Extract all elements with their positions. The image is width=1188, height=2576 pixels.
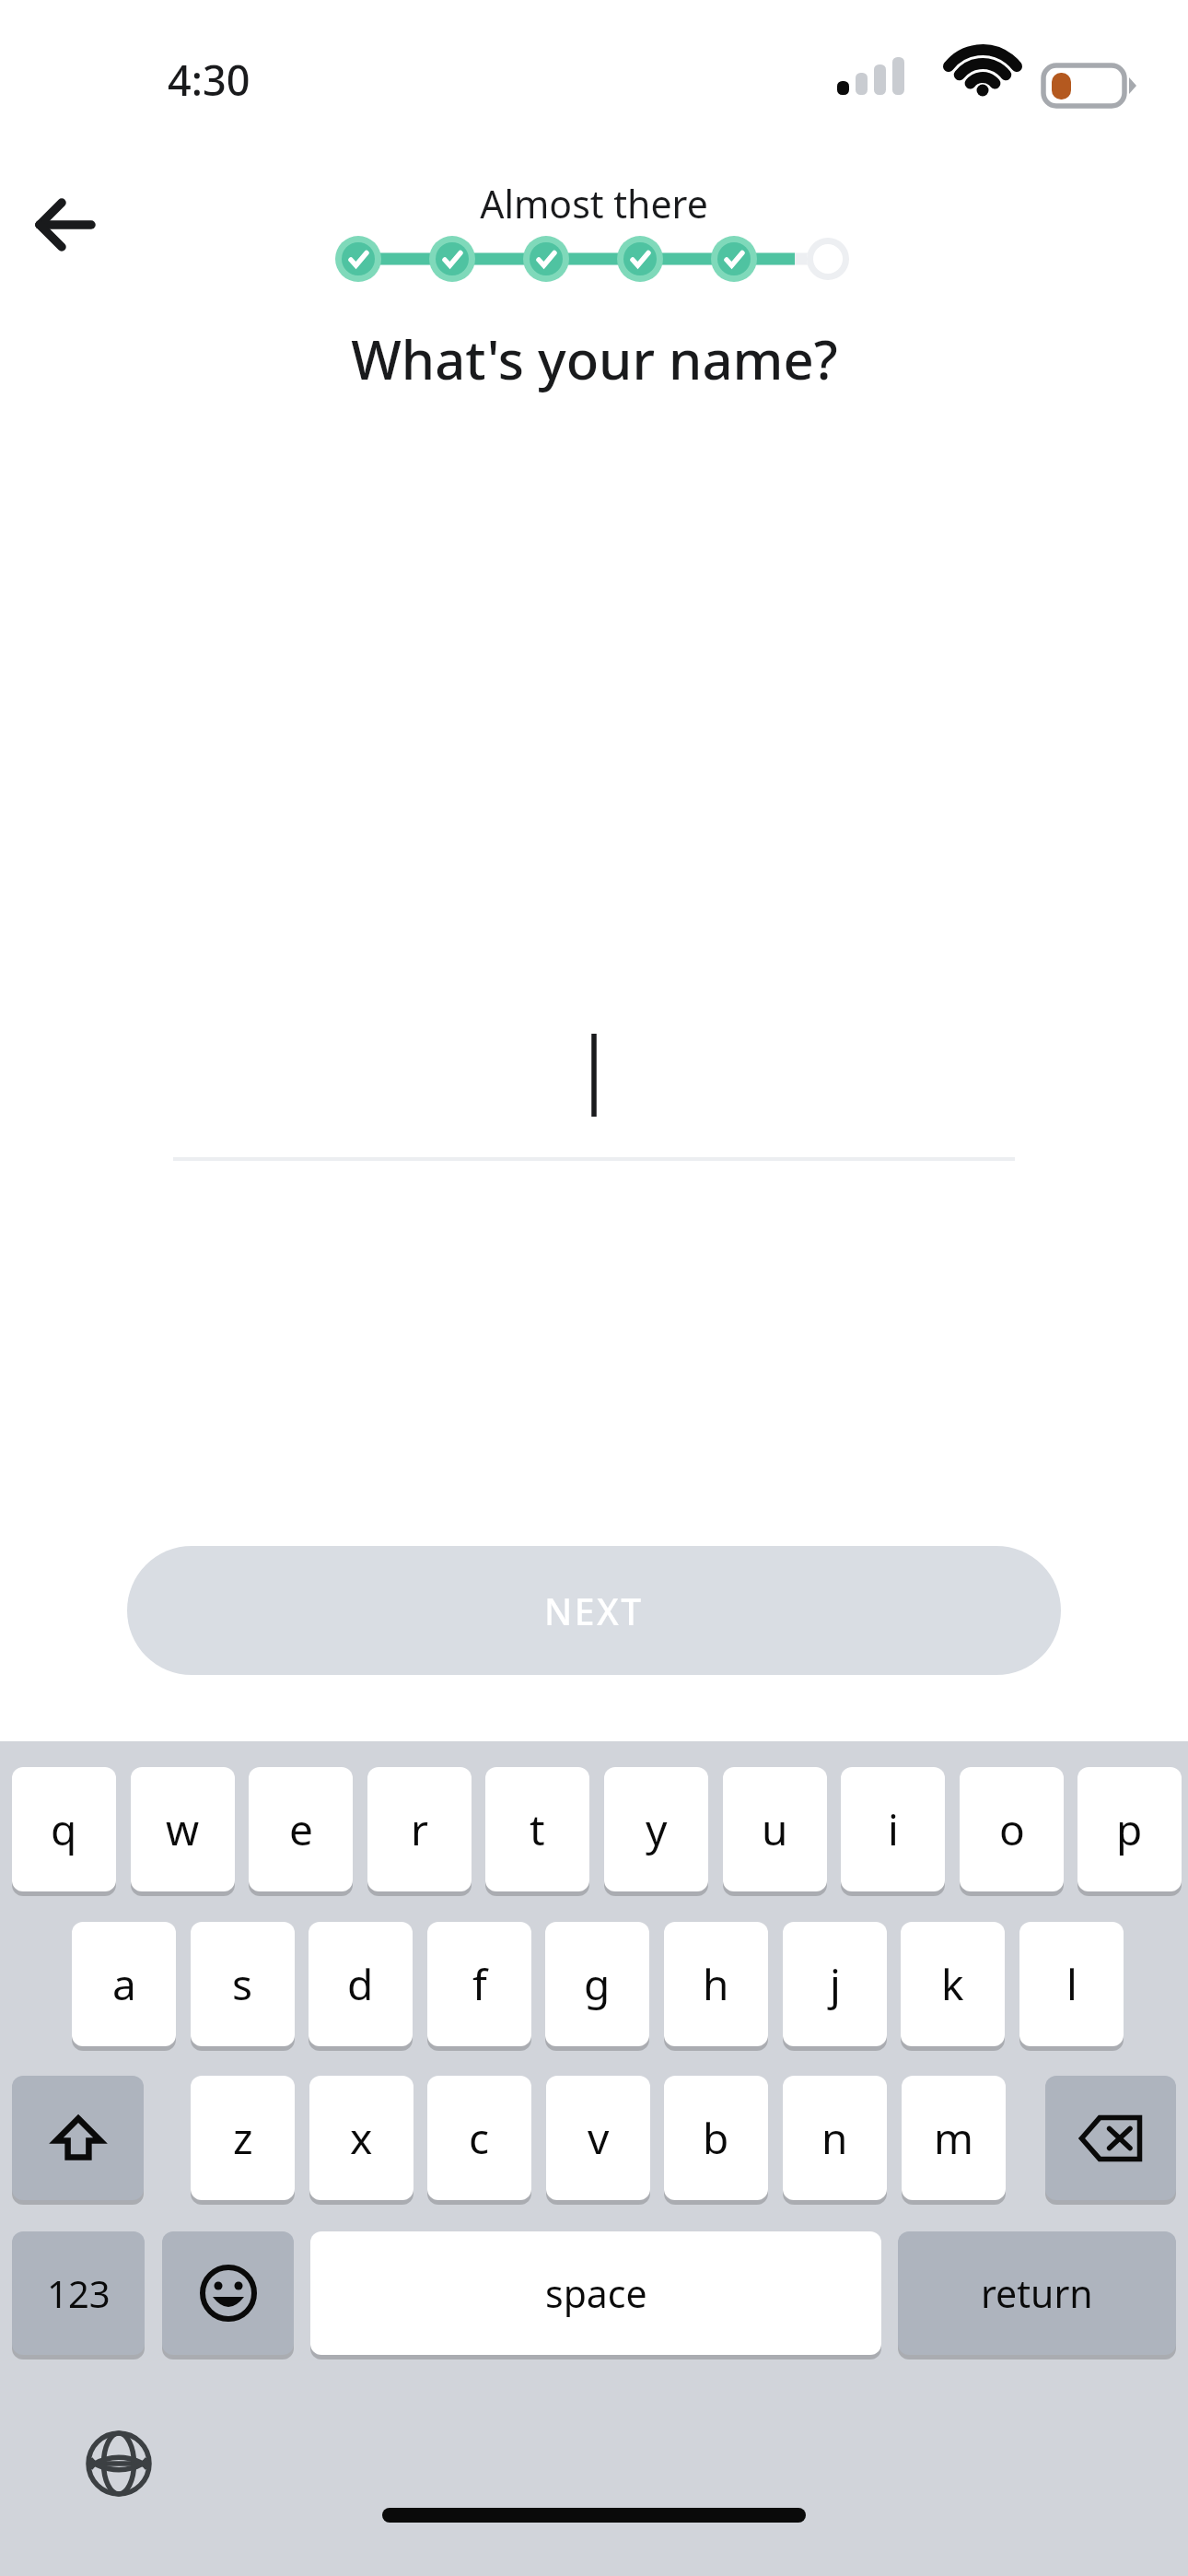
button[interactable]: w <box>131 1767 235 1891</box>
button[interactable]: x <box>309 2076 413 2200</box>
button[interactable]: m <box>902 2076 1006 2200</box>
button[interactable]: Emoji <box>162 2231 294 2355</box>
button[interactable]: u <box>723 1767 827 1891</box>
staticText: h <box>703 1955 729 2013</box>
button[interactable]: a <box>72 1922 176 2046</box>
button[interactable] <box>166 1004 1022 1179</box>
button[interactable]: t <box>485 1767 589 1891</box>
staticText: i <box>888 1800 899 1858</box>
button[interactable]: space <box>310 2231 881 2355</box>
staticText: j <box>830 1955 841 2013</box>
button[interactable]: f <box>427 1922 531 2046</box>
staticText: return <box>981 2267 1093 2319</box>
staticText: f <box>472 1955 487 2013</box>
button[interactable]: Shift <box>12 2076 144 2200</box>
staticText: v <box>588 2109 610 2167</box>
staticText: space <box>545 2267 647 2319</box>
button[interactable]: Backspace <box>1045 2076 1176 2200</box>
staticText: e <box>289 1800 313 1858</box>
staticText: w <box>166 1800 200 1858</box>
staticText: NEXT <box>544 1587 644 1635</box>
button[interactable]: return <box>898 2231 1176 2355</box>
staticText: l <box>1066 1955 1077 2013</box>
staticText: t <box>530 1800 545 1858</box>
button[interactable]: 123 <box>12 2231 145 2355</box>
staticText: k <box>941 1955 964 2013</box>
button[interactable]: p <box>1077 1767 1182 1891</box>
button[interactable]: NEXT <box>127 1546 1061 1675</box>
button[interactable]: Change keyboard <box>78 2423 159 2504</box>
staticText: 4:30 <box>168 52 250 108</box>
button[interactable]: l <box>1019 1922 1124 2046</box>
staticText: c <box>469 2109 490 2167</box>
button[interactable]: z <box>191 2076 295 2200</box>
staticText: o <box>999 1800 1025 1858</box>
staticText: r <box>411 1800 428 1858</box>
button[interactable]: d <box>309 1922 413 2046</box>
button[interactable]: s <box>191 1922 295 2046</box>
button[interactable]: q <box>12 1767 116 1891</box>
staticText: y <box>646 1800 668 1858</box>
button[interactable]: i <box>841 1767 945 1891</box>
button[interactable]: j <box>783 1922 887 2046</box>
button[interactable]: Back <box>23 182 108 267</box>
staticText: n <box>821 2109 848 2167</box>
staticText: z <box>233 2109 253 2167</box>
staticText: d <box>347 1955 374 2013</box>
button[interactable]: v <box>546 2076 650 2200</box>
staticText: s <box>232 1955 253 2013</box>
button[interactable]: y <box>604 1767 708 1891</box>
button[interactable]: e <box>249 1767 353 1891</box>
staticText: x <box>350 2109 373 2167</box>
staticText: a <box>112 1955 136 2013</box>
button[interactable]: h <box>664 1922 768 2046</box>
staticText: q <box>51 1800 77 1858</box>
staticText: b <box>703 2109 729 2167</box>
staticText: u <box>762 1800 788 1858</box>
staticText: 123 <box>47 2268 111 2318</box>
button[interactable]: g <box>545 1922 649 2046</box>
staticText: What's your name? <box>351 322 838 395</box>
button[interactable]: b <box>664 2076 768 2200</box>
button[interactable]: o <box>960 1767 1064 1891</box>
button[interactable]: r <box>367 1767 472 1891</box>
staticText: g <box>584 1955 611 2013</box>
button[interactable]: k <box>901 1922 1005 2046</box>
button[interactable]: c <box>427 2076 531 2200</box>
button[interactable]: n <box>783 2076 887 2200</box>
staticText: Almost there <box>480 178 708 229</box>
staticText: p <box>1116 1800 1143 1858</box>
staticText: m <box>934 2109 974 2167</box>
